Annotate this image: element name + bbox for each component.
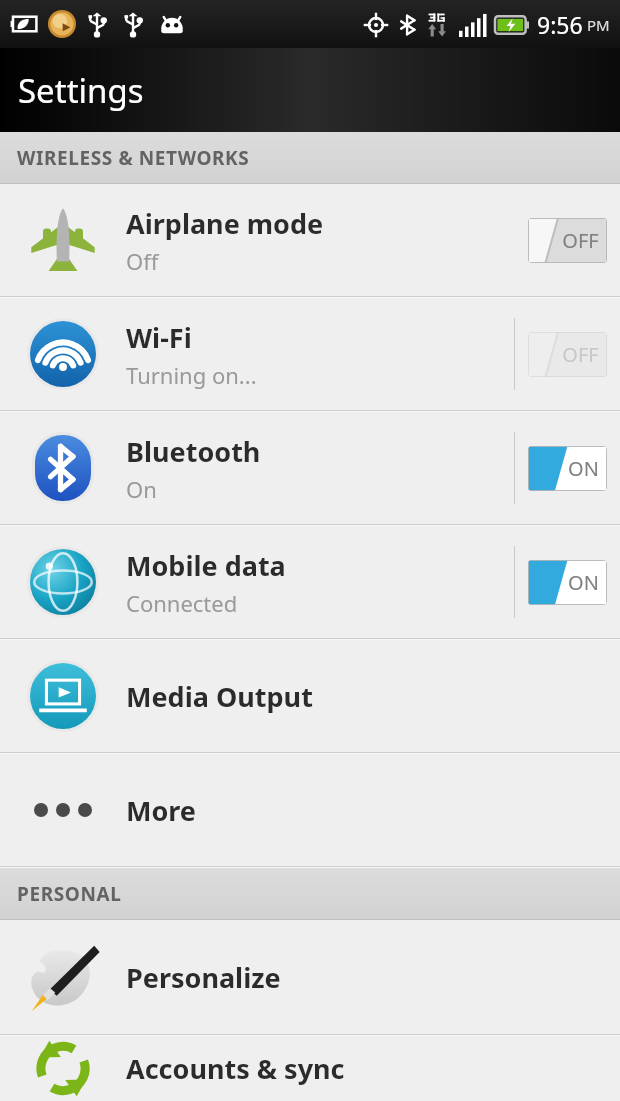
- staticText: Airplane mode: [126, 205, 324, 242]
- staticText: Media Output: [126, 678, 313, 715]
- staticText: ON: [568, 455, 599, 482]
- button[interactable]: Toggle off: [528, 332, 607, 377]
- button[interactable]: Toggle on: [528, 560, 607, 605]
- button[interactable]: Mobile data: [0, 526, 620, 638]
- button[interactable]: Wi-Fi: [0, 298, 620, 410]
- staticText: More: [126, 792, 196, 829]
- button[interactable]: Toggle off: [528, 218, 607, 263]
- button[interactable]: More: [0, 754, 620, 866]
- staticText: Off: [126, 246, 159, 276]
- button[interactable]: Accounts & sync: [0, 1036, 620, 1101]
- staticText: ON: [568, 569, 599, 596]
- staticText: Settings: [18, 68, 144, 113]
- button[interactable]: Toggle on: [528, 446, 607, 491]
- button[interactable]: Bluetooth: [0, 412, 620, 524]
- staticText: PM: [587, 15, 610, 35]
- staticText: Accounts & sync: [126, 1050, 345, 1087]
- staticText: On: [126, 474, 157, 504]
- staticText: Bluetooth: [126, 433, 261, 470]
- staticText: Wi-Fi: [126, 319, 192, 356]
- button[interactable]: Media Output: [0, 640, 620, 752]
- staticText: Personalize: [126, 959, 281, 996]
- staticText: OFF: [562, 227, 599, 254]
- staticText: WIRELESS & NETWORKS: [17, 145, 250, 171]
- staticText: Connected: [126, 588, 238, 618]
- staticText: PERSONAL: [17, 881, 122, 907]
- button[interactable]: Airplane mode: [0, 184, 620, 296]
- staticText: 9:56: [537, 9, 583, 40]
- staticText: Turning on...: [126, 360, 257, 390]
- button[interactable]: Personalize: [0, 920, 620, 1034]
- staticText: OFF: [562, 341, 599, 368]
- staticText: Mobile data: [126, 547, 286, 584]
